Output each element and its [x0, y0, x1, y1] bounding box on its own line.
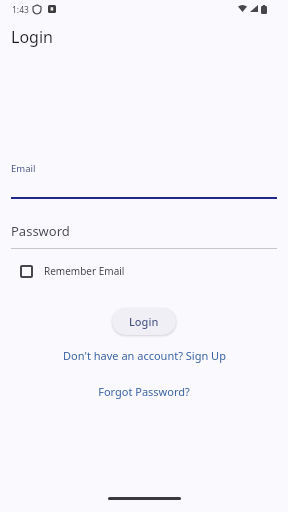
staticText: Remember Email	[44, 264, 125, 278]
staticText: Login	[11, 26, 53, 48]
staticText: 1:43	[12, 4, 29, 16]
button[interactable]: Forgot Password?	[98, 384, 190, 399]
staticText: Email	[11, 162, 36, 175]
button[interactable]: Login	[112, 308, 176, 335]
button[interactable]: Don't have an account? Sign Up	[63, 348, 226, 363]
button[interactable]: Remember Email	[12, 256, 133, 286]
staticText: Login	[129, 314, 159, 329]
staticText: Password	[11, 222, 70, 240]
